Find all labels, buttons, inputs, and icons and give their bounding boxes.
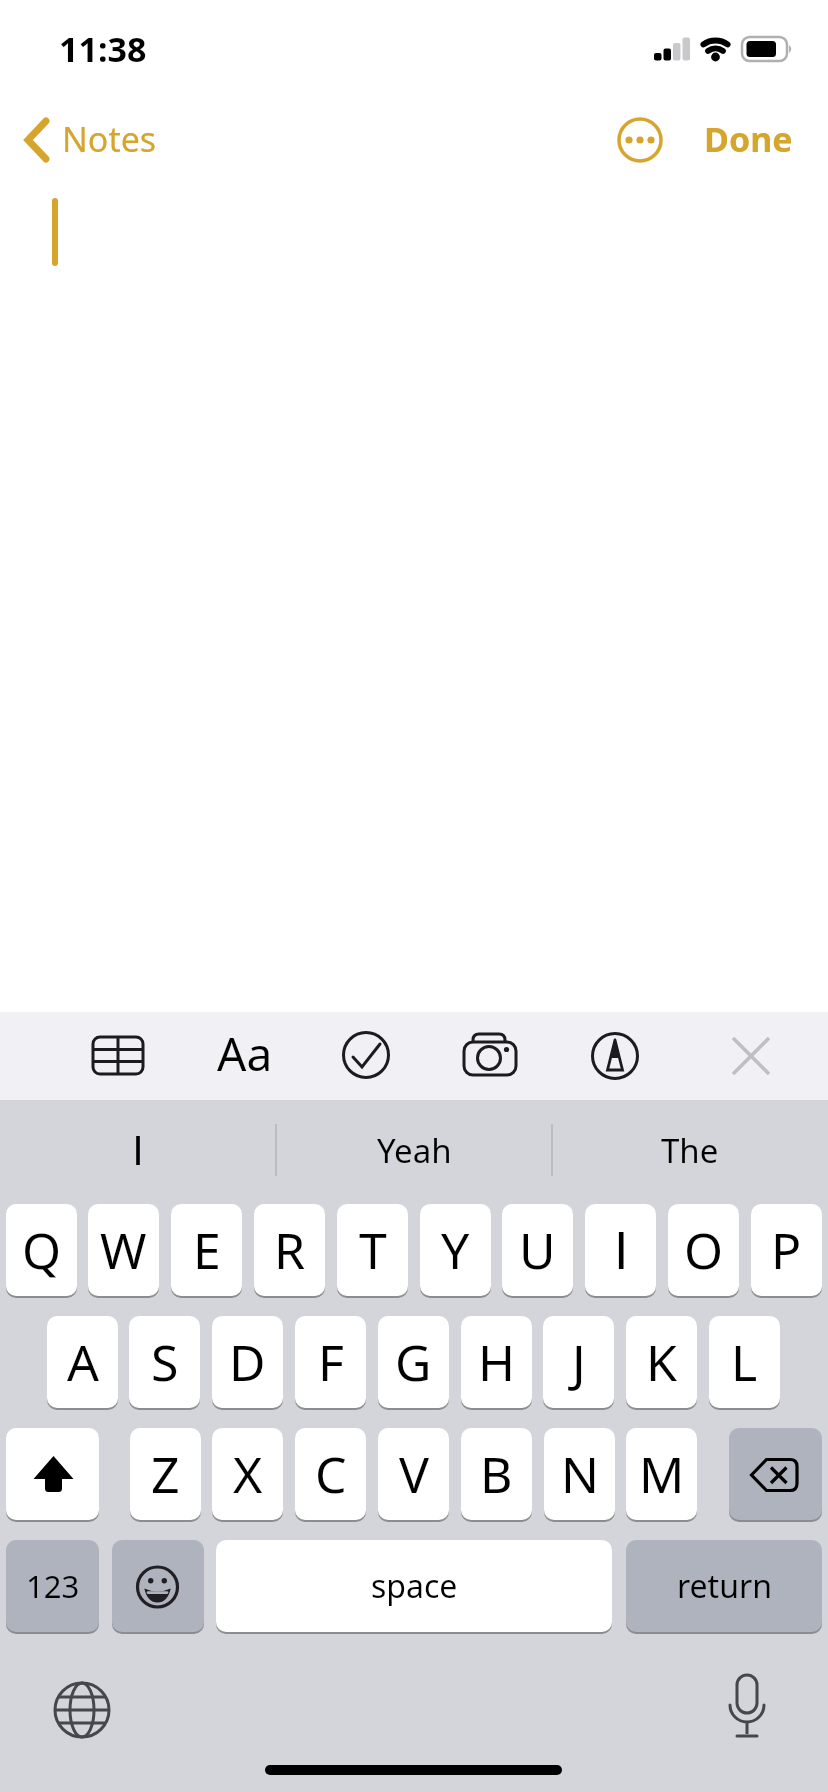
button[interactable]: R	[254, 1204, 325, 1296]
button[interactable]: F	[295, 1316, 366, 1408]
staticText: Y	[441, 1216, 470, 1284]
staticText: A	[67, 1328, 99, 1396]
staticText: N	[561, 1440, 599, 1508]
button[interactable]: Q	[6, 1204, 77, 1296]
button[interactable]: 123	[6, 1540, 99, 1632]
button[interactable]: K	[626, 1316, 697, 1408]
staticText: P	[771, 1216, 802, 1284]
staticText: Q	[22, 1216, 62, 1284]
staticText: M	[639, 1440, 685, 1508]
button[interactable]: L	[709, 1316, 780, 1408]
staticText: 123	[26, 1565, 80, 1607]
button[interactable]: M	[626, 1428, 697, 1520]
staticText: G	[395, 1328, 432, 1396]
staticText: space	[371, 1564, 458, 1608]
button[interactable]	[46, 1672, 122, 1748]
button[interactable]: return	[626, 1540, 822, 1632]
button[interactable]: S	[129, 1316, 200, 1408]
staticText: T	[359, 1216, 387, 1284]
button[interactable]: N	[544, 1428, 615, 1520]
button[interactable]	[706, 1672, 782, 1748]
button[interactable]: H	[461, 1316, 532, 1408]
staticText: S	[151, 1328, 179, 1396]
button[interactable]: The	[552, 1104, 828, 1196]
button[interactable]: Aa	[210, 1018, 280, 1088]
staticText: Notes	[62, 116, 157, 162]
staticText: E	[193, 1216, 221, 1284]
staticText: J	[572, 1328, 586, 1396]
staticText: B	[480, 1440, 513, 1508]
button[interactable]	[612, 112, 668, 168]
button[interactable]: Y	[420, 1204, 491, 1296]
staticText: L	[731, 1328, 758, 1396]
button[interactable]	[86, 1022, 148, 1084]
button[interactable]: W	[88, 1204, 159, 1296]
button[interactable]: A	[47, 1316, 118, 1408]
staticText: Z	[151, 1440, 180, 1508]
staticText: W	[100, 1216, 147, 1284]
button[interactable]	[6, 1428, 99, 1520]
staticText: Done	[704, 116, 793, 162]
button[interactable]	[112, 1540, 204, 1632]
staticText: 11:38	[59, 26, 147, 72]
staticText: X	[233, 1440, 263, 1508]
button[interactable]	[729, 1428, 822, 1520]
staticText: R	[274, 1216, 306, 1284]
staticText: H	[478, 1328, 516, 1396]
button[interactable]: C	[295, 1428, 366, 1520]
button[interactable]	[718, 1022, 780, 1084]
staticText: V	[399, 1440, 429, 1508]
button[interactable]: Z	[130, 1428, 201, 1520]
staticText: C	[315, 1440, 347, 1508]
button[interactable]: X	[212, 1428, 283, 1520]
button[interactable]: U	[502, 1204, 573, 1296]
staticText: Aa	[217, 1022, 273, 1085]
staticText: return	[677, 1564, 772, 1608]
button[interactable]	[458, 1022, 520, 1084]
button[interactable]: Notes	[18, 112, 158, 168]
staticText: Yeah	[377, 1128, 452, 1173]
button[interactable]: V	[378, 1428, 449, 1520]
button[interactable]: P	[751, 1204, 822, 1296]
button[interactable]: Yeah	[276, 1104, 552, 1196]
staticText: D	[229, 1328, 266, 1396]
staticText: F	[318, 1328, 344, 1396]
button[interactable]: space	[216, 1540, 612, 1632]
staticText: U	[519, 1216, 556, 1284]
button[interactable]: E	[171, 1204, 242, 1296]
button[interactable]	[584, 1022, 646, 1084]
staticText: O	[684, 1216, 724, 1284]
button[interactable]: G	[378, 1316, 449, 1408]
button[interactable]: B	[461, 1428, 532, 1520]
button[interactable]: Done	[698, 112, 798, 168]
button[interactable]	[0, 1104, 276, 1196]
button[interactable]: O	[668, 1204, 739, 1296]
staticText: The	[661, 1128, 719, 1173]
button[interactable]: T	[337, 1204, 408, 1296]
button[interactable]	[585, 1204, 656, 1296]
button[interactable]	[336, 1022, 398, 1084]
staticText: K	[646, 1328, 677, 1396]
button[interactable]: J	[543, 1316, 614, 1408]
button[interactable]: D	[212, 1316, 283, 1408]
